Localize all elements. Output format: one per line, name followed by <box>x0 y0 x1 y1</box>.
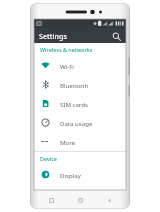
staticText: Wireless & networks <box>40 46 93 53</box>
staticText: Bluetooth <box>60 81 89 89</box>
button[interactable]: Wi-Fi <box>34 56 126 75</box>
staticText: Settings <box>39 31 67 41</box>
button[interactable]: Recent apps <box>44 193 58 207</box>
staticText: Wi-Fi <box>60 62 74 70</box>
staticText: More <box>60 138 76 146</box>
button[interactable]: Back <box>102 193 116 207</box>
staticText: SIM cards <box>60 100 88 108</box>
button[interactable]: Search settings <box>110 30 122 42</box>
button[interactable]: Data usage <box>34 113 126 132</box>
button[interactable]: Home <box>73 193 87 207</box>
staticText: Device <box>40 155 57 162</box>
staticText: Display <box>60 171 81 179</box>
button[interactable]: Bluetooth <box>34 75 126 94</box>
staticText: Data usage <box>60 119 93 127</box>
button[interactable]: Display <box>34 165 126 184</box>
button[interactable]: SIM cards <box>34 94 126 113</box>
button[interactable]: More <box>34 132 126 151</box>
